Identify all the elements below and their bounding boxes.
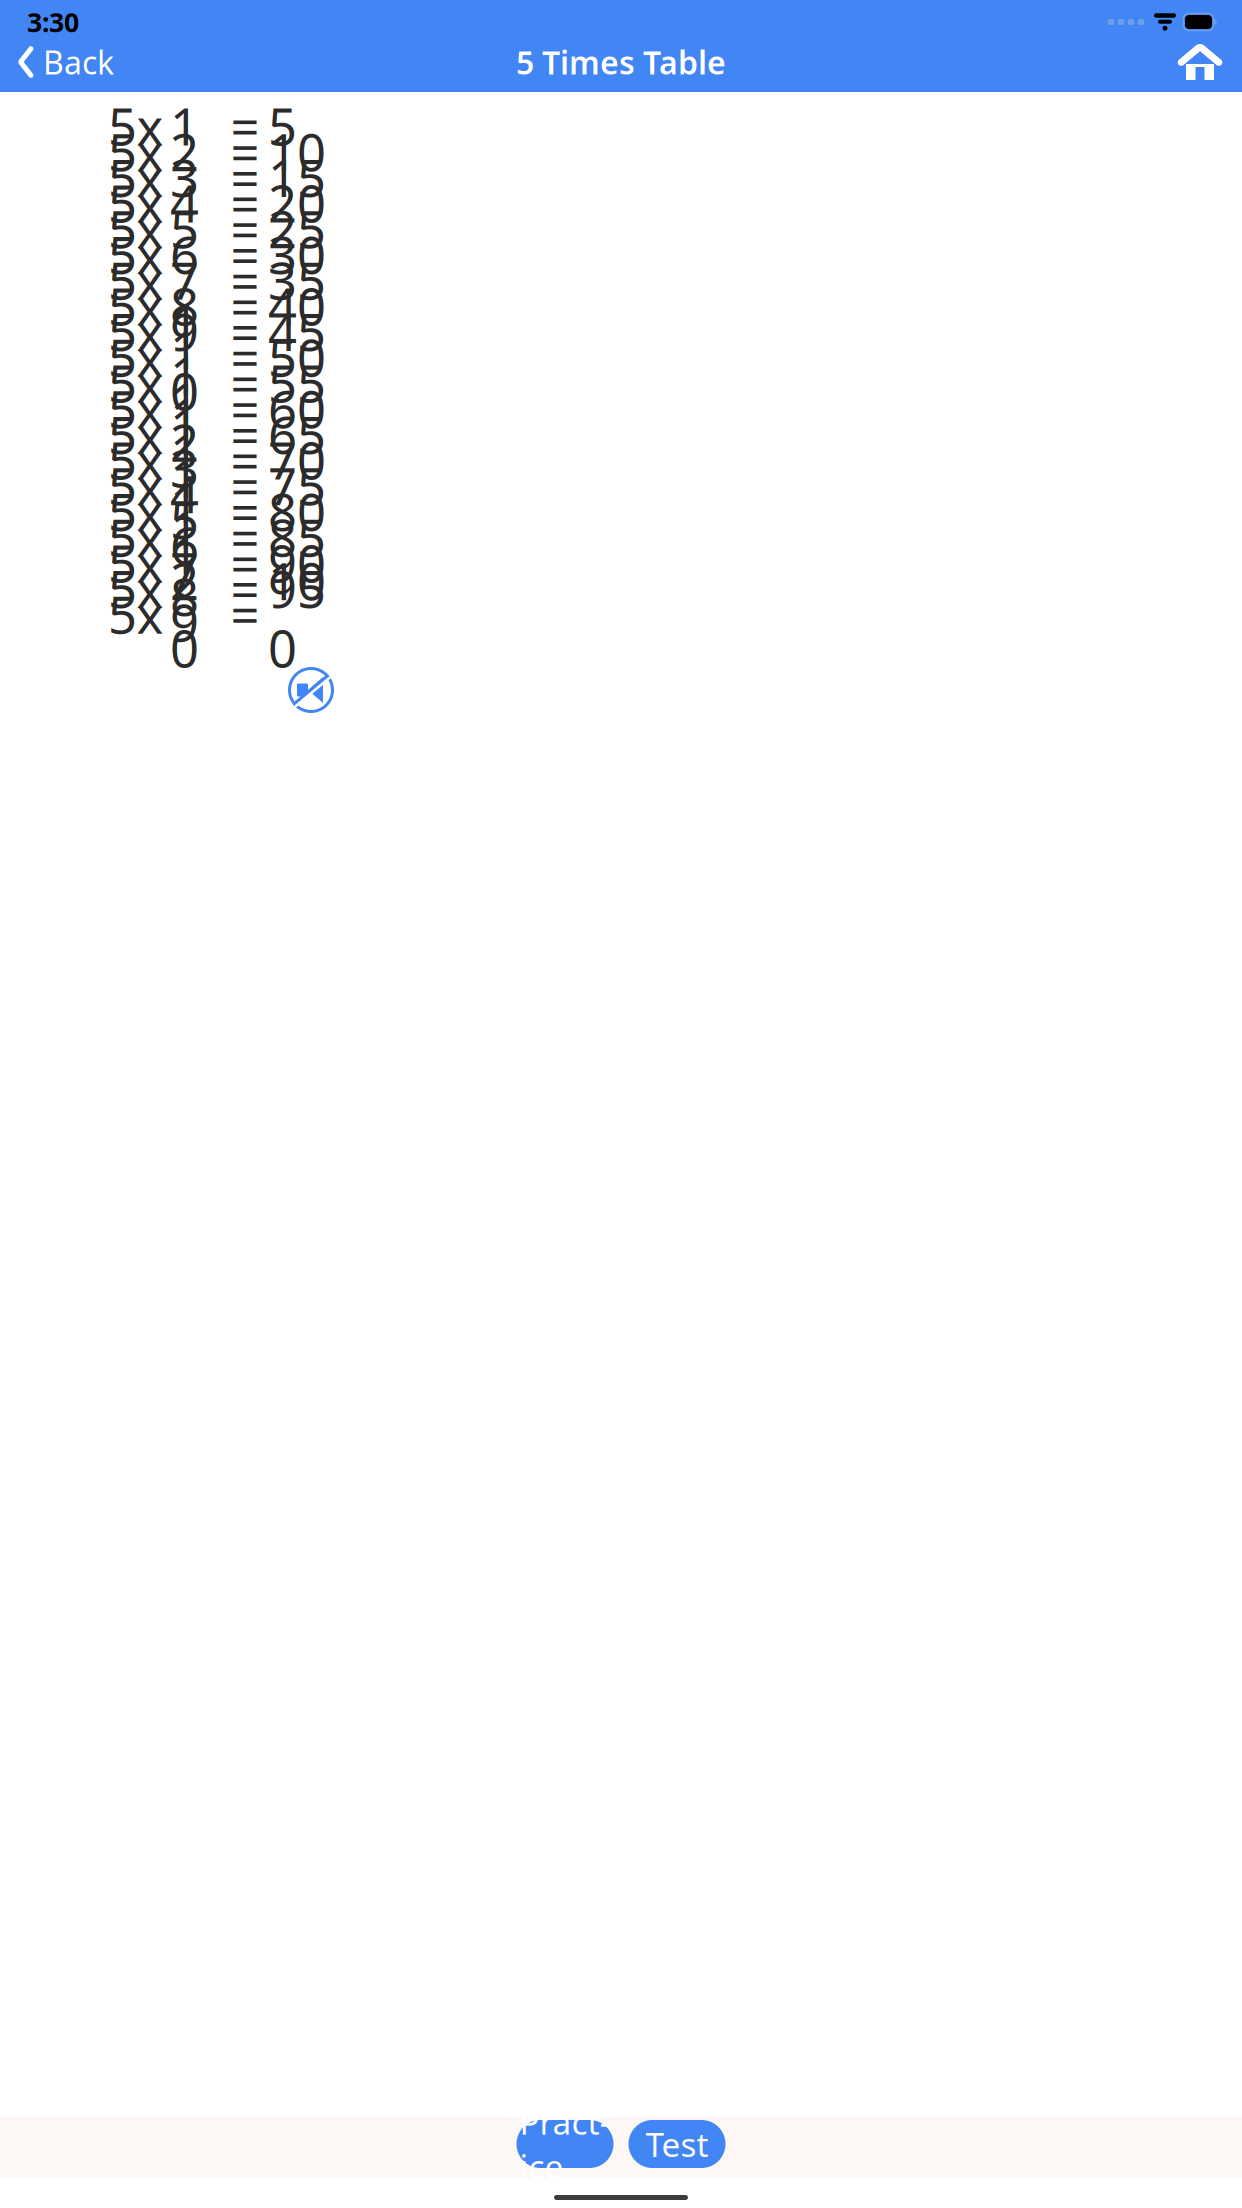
staticText: =	[230, 221, 259, 288]
staticText: =	[230, 298, 259, 365]
staticText: =	[230, 478, 259, 545]
staticText: Test	[645, 2122, 708, 2166]
staticText: 10	[170, 290, 199, 424]
staticText: x	[136, 478, 163, 545]
button[interactable]: Back	[8, 35, 114, 89]
staticText: x	[136, 452, 163, 519]
staticText: 20	[268, 169, 326, 237]
staticText: Practice	[519, 2100, 610, 2188]
staticText: x	[136, 92, 163, 159]
staticText: x	[136, 323, 163, 391]
staticText: 85	[268, 503, 326, 571]
staticText: 5	[108, 92, 137, 159]
staticText: x	[136, 298, 163, 365]
staticText: x	[136, 426, 163, 494]
staticText: x	[136, 349, 163, 416]
staticText: 5	[108, 298, 137, 365]
staticText: 1	[170, 92, 199, 159]
button[interactable]: Test	[628, 2120, 725, 2168]
staticText: 14	[170, 393, 199, 527]
staticText: 5	[108, 529, 137, 596]
staticText: 10	[268, 118, 326, 185]
staticText: 20	[170, 547, 199, 681]
staticText: =	[230, 555, 259, 622]
staticText: 11	[170, 316, 199, 450]
staticText: =	[230, 349, 259, 416]
staticText: =	[230, 118, 259, 185]
staticText: 17	[170, 470, 199, 604]
staticText: =	[230, 272, 259, 339]
staticText: =	[230, 169, 259, 237]
staticText: 40	[268, 272, 326, 339]
staticText: 55	[268, 349, 326, 416]
staticText: 100	[268, 547, 326, 681]
staticText: 60	[268, 375, 326, 442]
staticText: 5	[108, 426, 137, 494]
staticText: 5	[108, 272, 137, 339]
staticText: 2	[170, 118, 199, 185]
staticText: 5	[108, 478, 137, 545]
staticText: 30	[268, 221, 326, 288]
staticText: 5	[108, 375, 137, 442]
staticText: 15	[170, 418, 199, 553]
staticText: Back	[43, 41, 114, 83]
staticText: 25	[268, 195, 326, 262]
button[interactable]: Home	[1166, 42, 1234, 81]
staticText: 70	[268, 426, 326, 494]
staticText: 95	[268, 555, 326, 622]
staticText: =	[230, 426, 259, 494]
staticText: 5	[108, 195, 137, 262]
staticText: 35	[268, 246, 326, 314]
staticText: =	[230, 195, 259, 262]
staticText: =	[230, 529, 259, 596]
staticText: 5	[108, 144, 137, 211]
staticText: x	[136, 375, 163, 442]
staticText: 5	[108, 401, 137, 468]
staticText: 5	[108, 580, 137, 648]
staticText: 16	[170, 444, 199, 579]
staticText: =	[230, 323, 259, 391]
staticText: =	[230, 452, 259, 519]
staticText: 4	[170, 169, 199, 237]
staticText: 5	[108, 246, 137, 314]
staticText: 3	[170, 144, 199, 211]
staticText: 5 Times Table	[516, 41, 726, 83]
staticText: x	[136, 195, 163, 262]
staticText: x	[136, 555, 163, 622]
staticText: x	[136, 272, 163, 339]
staticText: 45	[268, 298, 326, 365]
staticText: =	[230, 246, 259, 314]
staticText: x	[136, 169, 163, 237]
staticText: 5	[108, 503, 137, 571]
staticText: =	[230, 503, 259, 571]
staticText: =	[230, 375, 259, 442]
staticText: 6	[170, 221, 199, 288]
staticText: 50	[268, 323, 326, 391]
staticText: 7	[170, 246, 199, 314]
staticText: =	[230, 144, 259, 211]
staticText: 65	[268, 401, 326, 468]
staticText: 5	[170, 195, 199, 262]
staticText: 75	[268, 452, 326, 519]
staticText: 5	[268, 92, 297, 159]
staticText: 15	[268, 144, 326, 211]
staticText: 5	[108, 349, 137, 416]
staticText: 9	[170, 298, 199, 365]
staticText: x	[136, 246, 163, 314]
staticText: 5	[108, 555, 137, 622]
button[interactable]: Mute audio	[282, 661, 340, 719]
staticText: x	[136, 401, 163, 468]
staticText: x	[136, 118, 163, 185]
staticText: 3:30	[27, 4, 79, 40]
staticText: 13	[170, 367, 199, 502]
staticText: 5	[108, 118, 137, 185]
staticText: x	[136, 144, 163, 211]
staticText: 12	[170, 341, 199, 476]
staticText: 5	[108, 323, 137, 391]
staticText: x	[136, 580, 163, 648]
staticText: 90	[268, 529, 326, 596]
button[interactable]: Practice	[516, 2120, 613, 2168]
staticText: 19	[170, 521, 199, 656]
staticText: x	[136, 529, 163, 596]
staticText: =	[230, 92, 259, 159]
